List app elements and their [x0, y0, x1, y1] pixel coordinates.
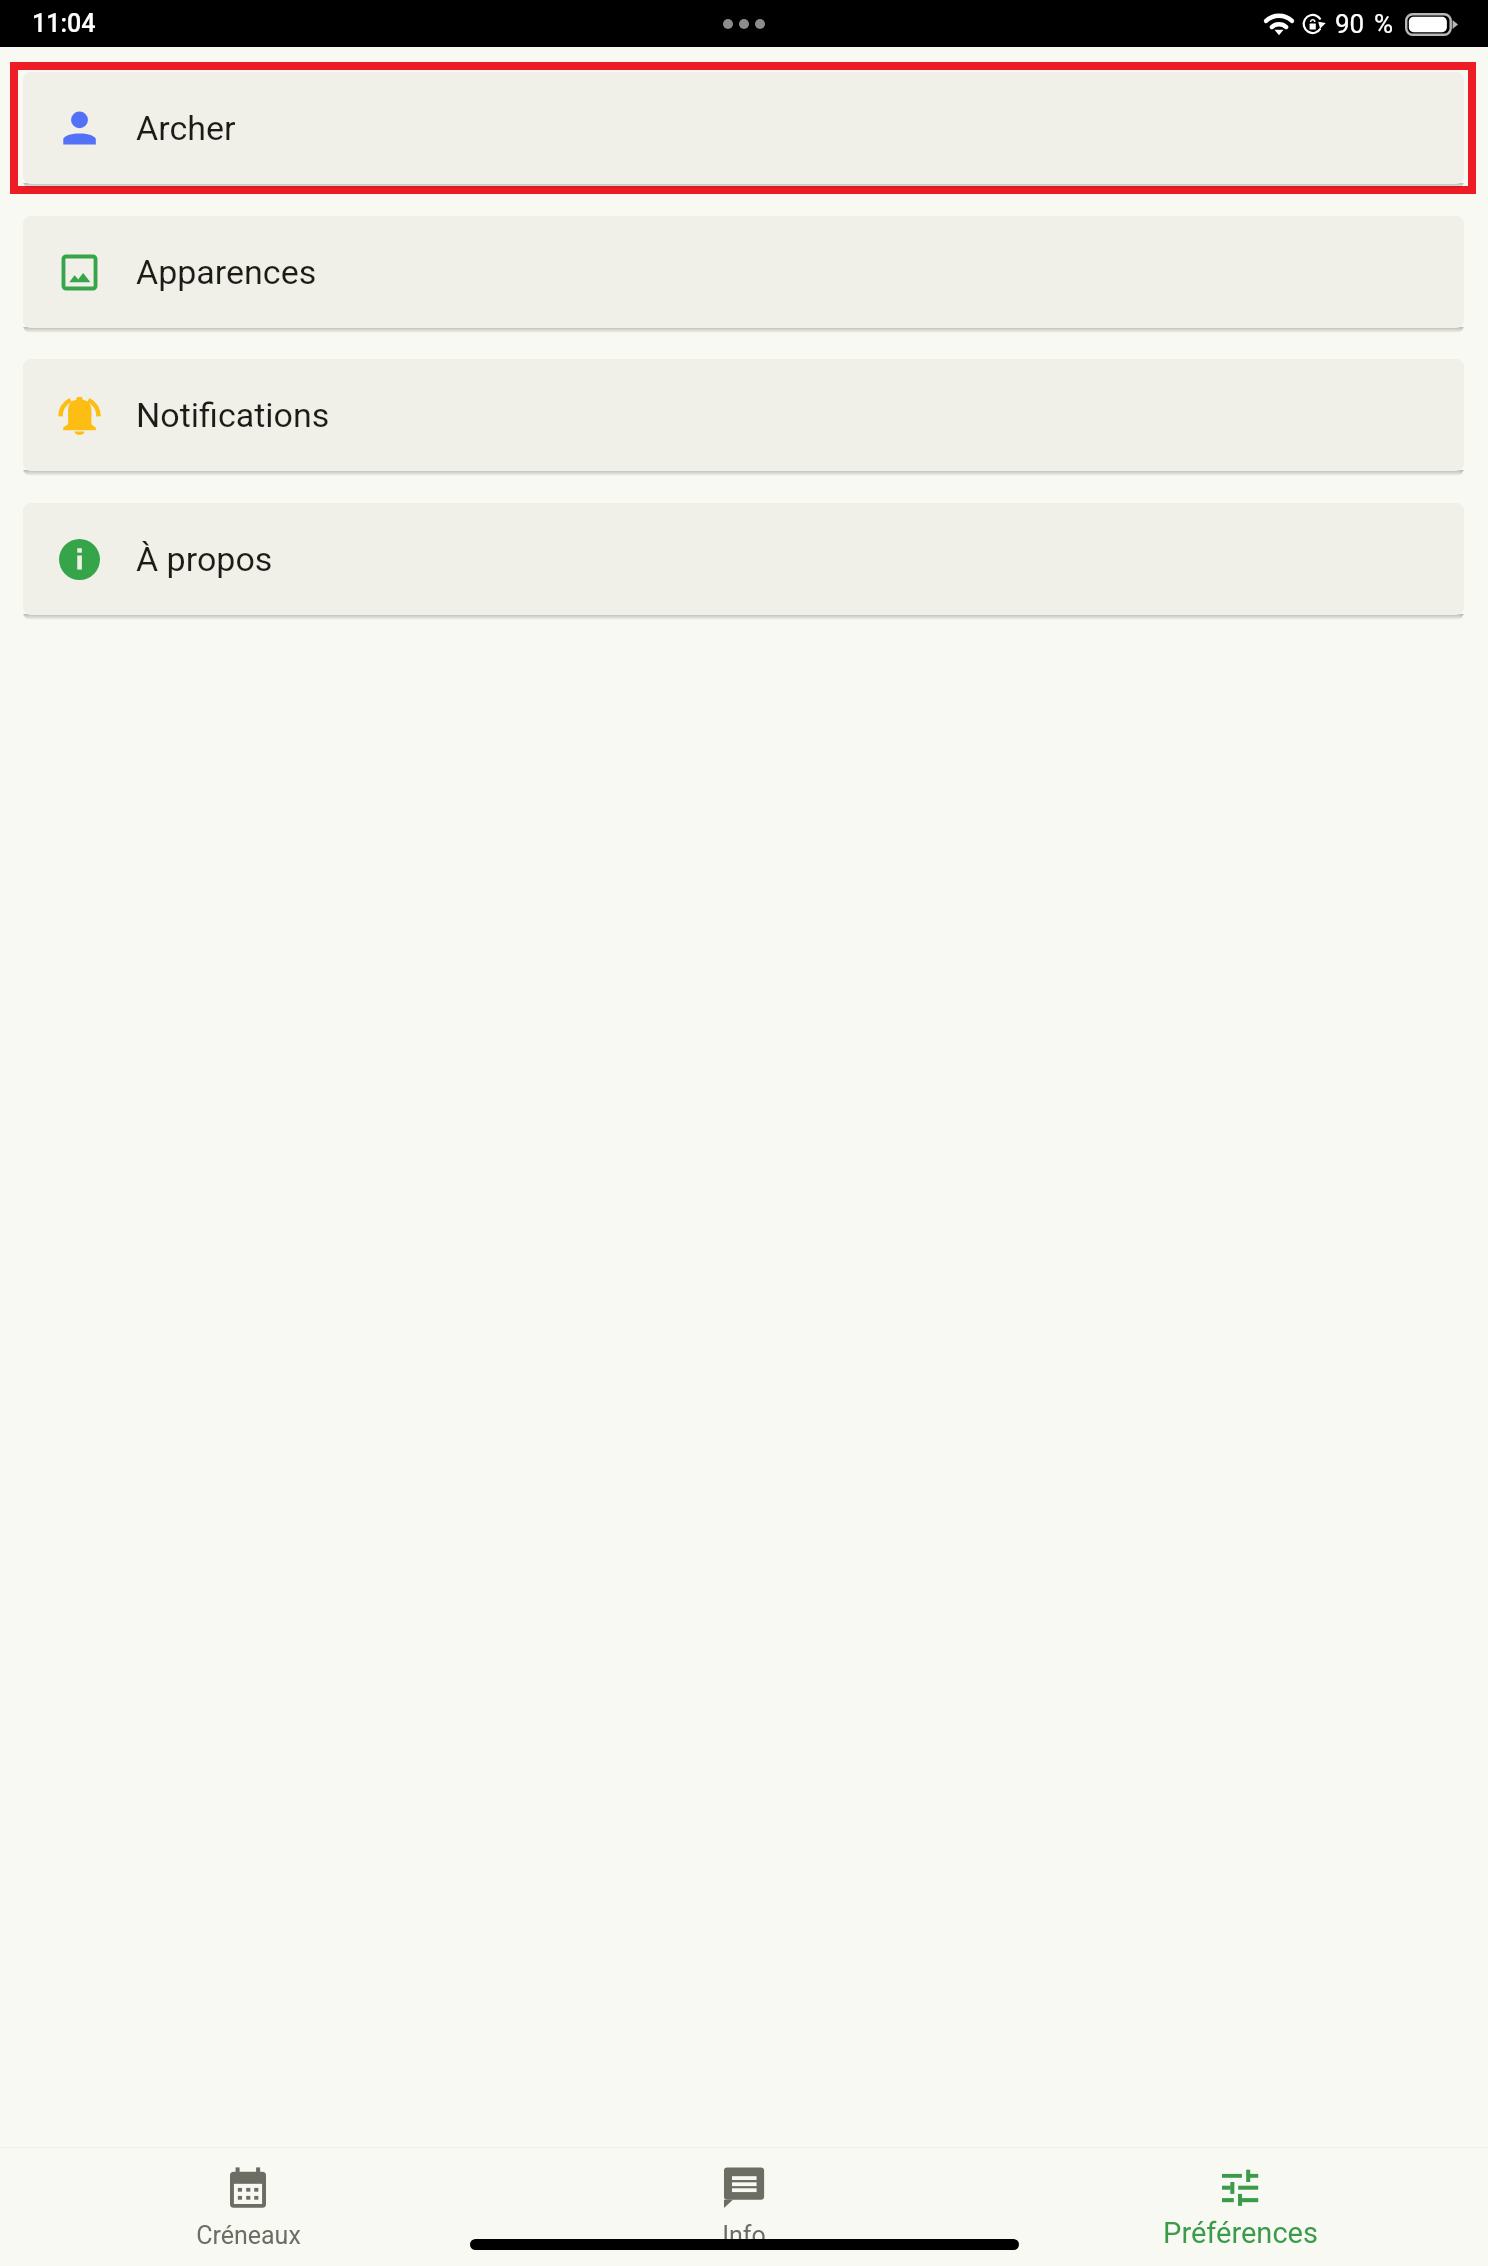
- button[interactable]: Notifications: [23, 359, 1464, 471]
- staticText: Notifications: [136, 395, 330, 435]
- other: Préférences: [1218, 2167, 1262, 2211]
- staticText: Archer: [136, 108, 236, 148]
- other: Créneaux: [226, 2167, 270, 2211]
- staticText: Info: [722, 2221, 766, 2250]
- staticText: Créneaux: [196, 2221, 301, 2250]
- staticText: %: [1374, 9, 1394, 39]
- button[interactable]: Info: [496, 2147, 992, 2266]
- button[interactable]: Préférences: [992, 2147, 1488, 2266]
- staticText: Apparences: [136, 252, 317, 292]
- button[interactable]: À propos: [23, 503, 1464, 615]
- staticText: À propos: [136, 539, 273, 579]
- staticText: 11:04: [32, 9, 96, 38]
- staticText: Préférences: [1163, 2216, 1318, 2250]
- button[interactable]: Archer: [23, 72, 1464, 184]
- button[interactable]: Créneaux: [0, 2147, 496, 2266]
- button[interactable]: Apparences: [23, 216, 1464, 328]
- other: Info: [722, 2167, 766, 2211]
- staticText: 90: [1335, 9, 1365, 39]
